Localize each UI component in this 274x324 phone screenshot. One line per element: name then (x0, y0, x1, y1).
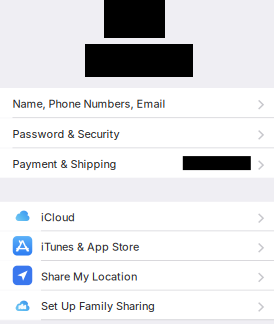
button[interactable]: iTunes & App Store (0, 231, 274, 260)
button[interactable]: iCloud (0, 202, 274, 231)
staticText: Payment & Shipping (12, 157, 116, 171)
button[interactable]: Password & Security (0, 118, 274, 148)
button[interactable]: Name, Phone Numbers, Email (0, 88, 274, 117)
staticText: Share My Location (41, 270, 137, 283)
button[interactable]: Share My Location (0, 261, 274, 290)
staticText: iCloud (41, 211, 75, 224)
staticText: Name, Phone Numbers, Email (12, 97, 165, 110)
staticText: Set Up Family Sharing (41, 299, 155, 313)
staticText: Password & Security (12, 127, 119, 140)
button[interactable]: Set Up Family Sharing (0, 291, 274, 319)
button[interactable]: Payment & Shipping (0, 148, 274, 178)
staticText: iTunes & App Store (41, 240, 139, 253)
